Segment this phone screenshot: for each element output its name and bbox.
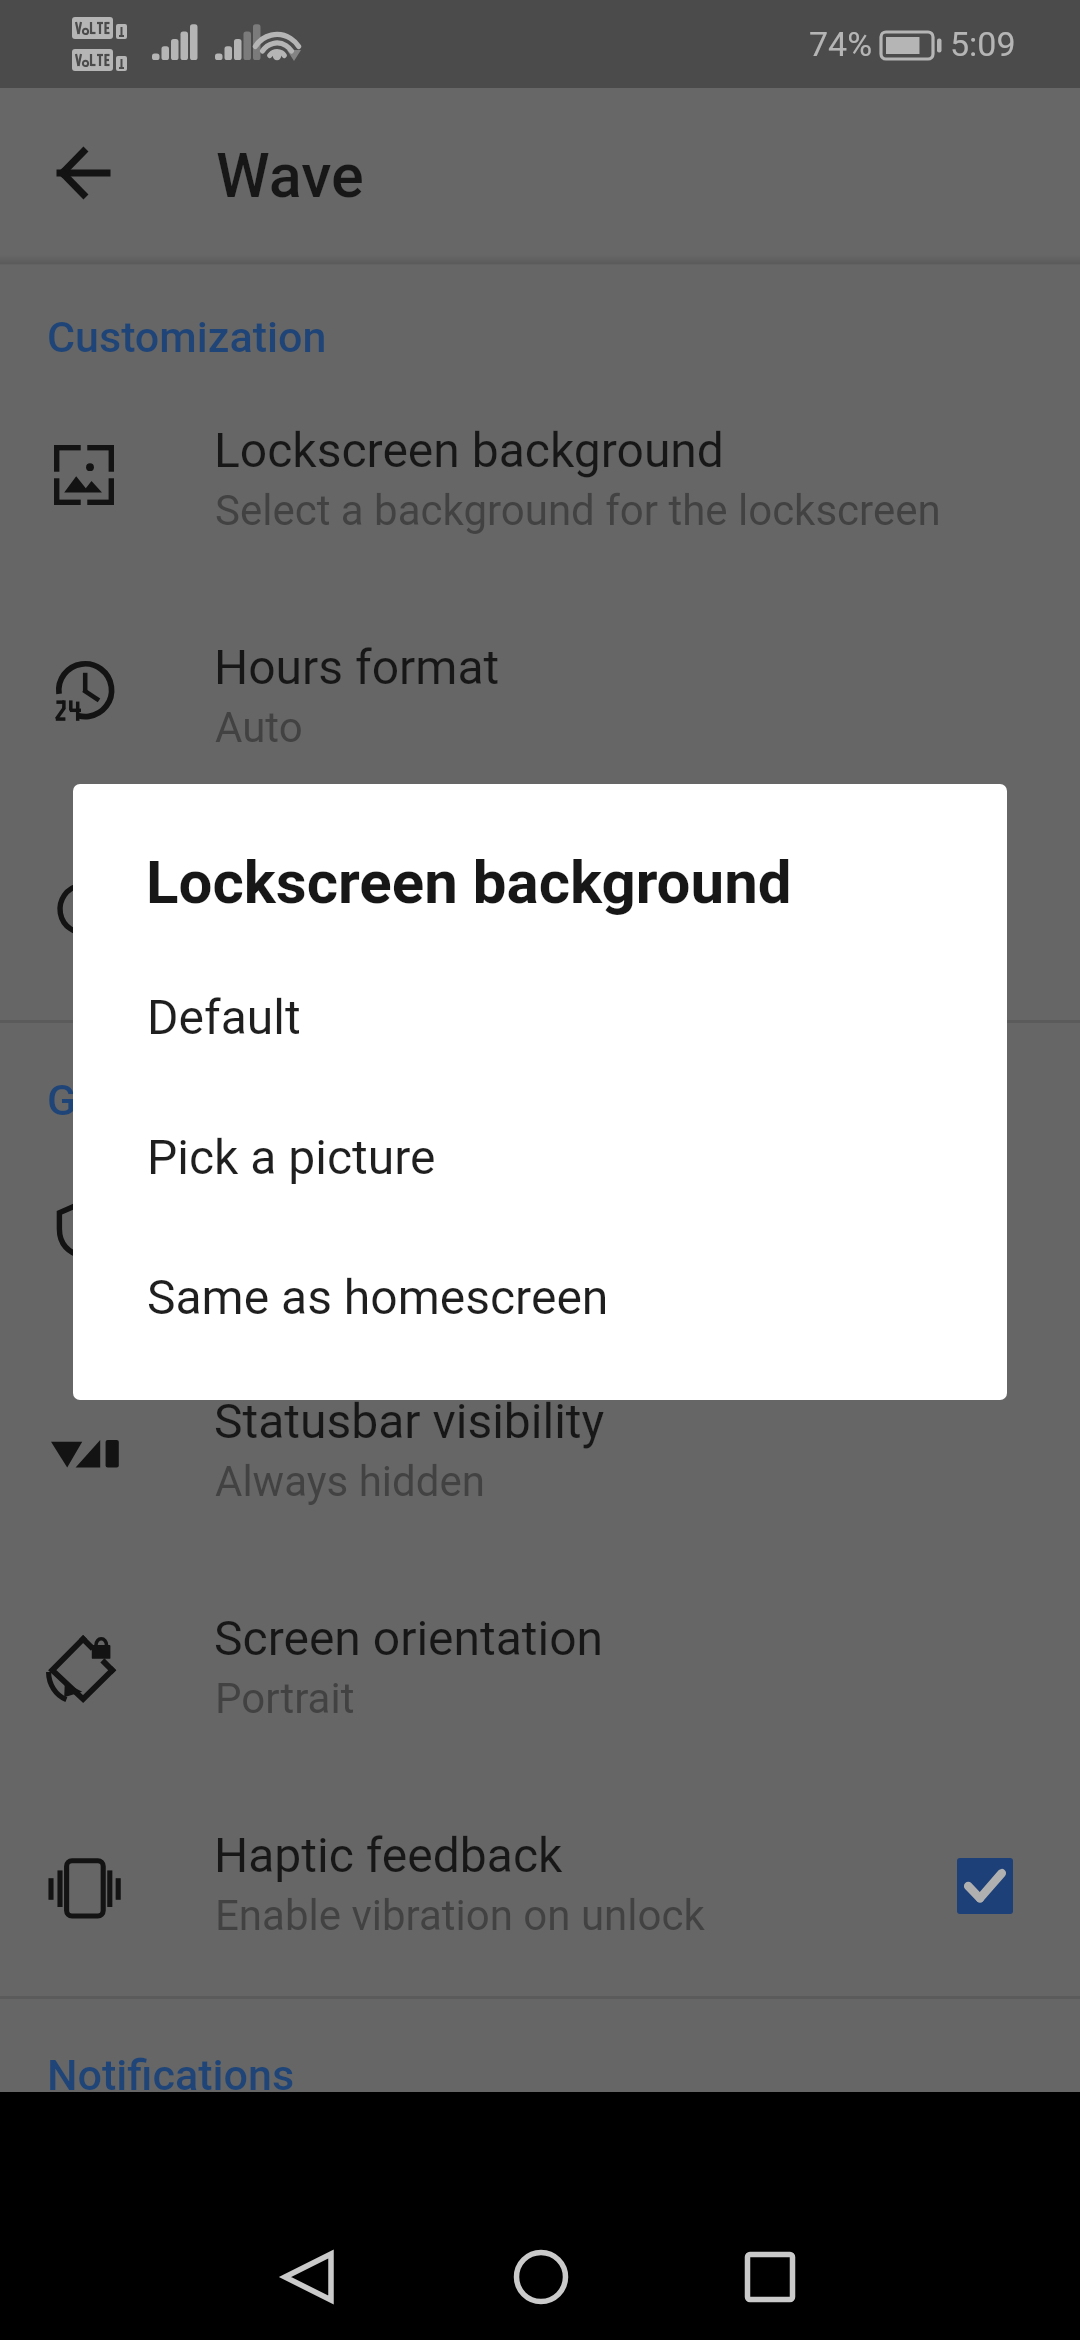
staticText: Lockscreen background	[146, 847, 792, 917]
staticText: Default	[147, 989, 301, 1045]
staticText: Pick a picture	[147, 1129, 436, 1185]
button[interactable]: Recent apps	[700, 2207, 840, 2340]
button[interactable]: Haptic feedback	[0, 1772, 1080, 1989]
button[interactable]: Unlock method	[0, 1121, 1080, 1338]
button[interactable]: Back	[238, 2207, 378, 2340]
staticText: Wave	[216, 140, 364, 211]
staticText: Haptic feedback	[214, 1827, 563, 1883]
staticText: Screen orientation	[214, 1610, 604, 1666]
button[interactable]: Lockscreen timeout	[0, 801, 1080, 1018]
button[interactable]: Statusbar visibility	[0, 1338, 1080, 1555]
staticText: 74%	[809, 24, 873, 64]
button[interactable]: Lockscreen background	[0, 367, 1080, 584]
staticText: General	[47, 1075, 196, 1125]
button[interactable]: Navigate up	[33, 124, 132, 223]
staticText: Always hidden	[215, 1457, 485, 1506]
button[interactable]: Same as homescreen	[73, 1228, 1007, 1338]
button[interactable]: Home	[471, 2207, 611, 2340]
button[interactable]: Hours format	[0, 584, 1080, 801]
button[interactable]: Haptic feedback toggle	[957, 1858, 1013, 1914]
button[interactable]: Default	[73, 948, 1007, 1058]
staticText: Lockscreen background	[214, 422, 724, 478]
staticText: Unlock method	[214, 1176, 537, 1232]
staticText: Customization	[47, 312, 327, 362]
staticText: 5:09	[950, 24, 1016, 64]
staticText: Same as homescreen	[147, 1269, 609, 1325]
staticText: Lockscreen timeout	[214, 856, 637, 912]
staticText: Auto	[215, 703, 303, 752]
staticText: Statusbar visibility	[214, 1393, 605, 1449]
staticText: Swipe	[215, 1240, 328, 1289]
staticText: Notifications	[47, 2050, 295, 2100]
staticText: Select a background for the lockscreen	[215, 486, 941, 535]
staticText: Portrait	[215, 1674, 355, 1723]
staticText: Hours format	[214, 639, 500, 695]
staticText: Enable vibration on unlock	[215, 1891, 705, 1940]
button[interactable]: Screen orientation	[0, 1555, 1080, 1772]
button[interactable]: Pick a picture	[73, 1088, 1007, 1198]
